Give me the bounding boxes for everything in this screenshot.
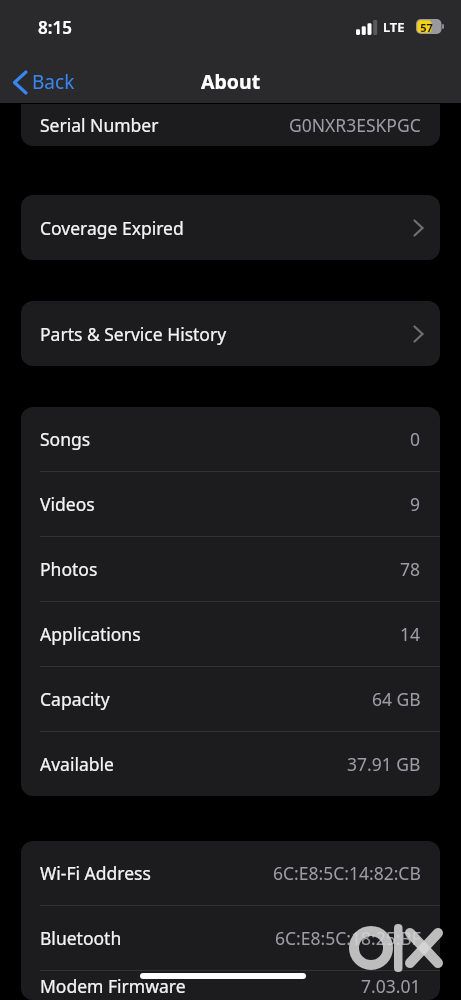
staticText: 6C:E8:5C:18:25:BF [275, 926, 421, 950]
button[interactable]: Bluetooth [21, 906, 440, 970]
staticText: 7.03.01 [361, 974, 421, 998]
staticText: Capacity [40, 687, 110, 711]
staticText: Applications [40, 622, 141, 646]
button[interactable]: Songs [21, 407, 440, 471]
button[interactable]: Serial Number [21, 104, 440, 146]
staticText: 6C:E8:5C:14:82:CB [273, 861, 421, 885]
button[interactable]: Back [6, 62, 83, 102]
other: Open [414, 326, 423, 342]
staticText: 0 [410, 427, 421, 451]
button[interactable]: Parts & Service History [21, 301, 440, 366]
staticText: About [201, 68, 261, 95]
staticText: Back [32, 69, 75, 95]
staticText: Photos [40, 557, 98, 581]
button[interactable]: Modem Firmware [21, 971, 440, 1000]
button[interactable]: Coverage Expired [21, 195, 440, 260]
staticText: 57 [419, 20, 434, 35]
staticText: G0NXR3ESKPGC [289, 113, 421, 137]
button[interactable]: Photos [21, 537, 440, 601]
staticText: Bluetooth [40, 926, 122, 950]
button[interactable]: Available [21, 732, 440, 796]
button[interactable]: Videos [21, 472, 440, 536]
staticText: Serial Number [40, 113, 159, 137]
staticText: Videos [40, 492, 95, 516]
staticText: 78 [400, 557, 421, 581]
staticText: Modem Firmware [40, 974, 186, 998]
button[interactable]: Capacity [21, 667, 440, 731]
button[interactable]: Wi-Fi Address [21, 841, 440, 905]
button[interactable]: Applications [21, 602, 440, 666]
staticText: Available [40, 752, 114, 776]
staticText: Parts & Service History [40, 322, 227, 346]
staticText: 14 [400, 622, 421, 646]
other: Open [414, 220, 423, 236]
staticText: 8:15 [38, 16, 72, 39]
staticText: Coverage Expired [40, 216, 184, 240]
staticText: 64 GB [372, 687, 421, 711]
staticText: 9 [410, 492, 421, 516]
staticText: 37.91 GB [347, 752, 421, 776]
staticText: LTE [383, 18, 405, 36]
staticText: Songs [40, 427, 91, 451]
staticText: Wi-Fi Address [40, 861, 151, 885]
